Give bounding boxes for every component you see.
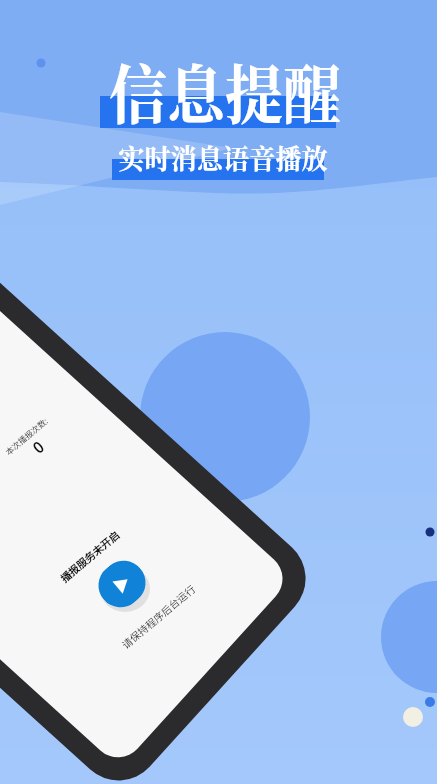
staticText: 本次播报次数: xyxy=(2,414,50,457)
staticText: 信息提醒 xyxy=(109,44,341,136)
staticText: 0 xyxy=(28,435,49,458)
staticText: 实时消息语音播放 xyxy=(118,138,328,177)
staticText: 请保持程序后台运行 xyxy=(118,581,198,652)
button[interactable]: Play xyxy=(89,552,155,616)
staticText: 播报服务未开启 xyxy=(57,527,122,585)
